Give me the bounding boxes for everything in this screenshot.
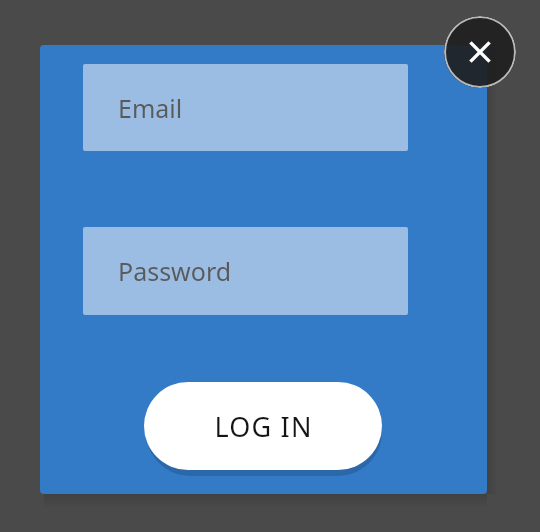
staticText: Email (118, 91, 183, 125)
staticText: Password (118, 254, 232, 288)
button[interactable]: Close (444, 16, 516, 88)
staticText: LOG IN (214, 408, 313, 445)
button[interactable]: LOG IN (144, 382, 382, 470)
button[interactable]: Email (83, 64, 408, 151)
button[interactable]: Password (83, 227, 408, 315)
